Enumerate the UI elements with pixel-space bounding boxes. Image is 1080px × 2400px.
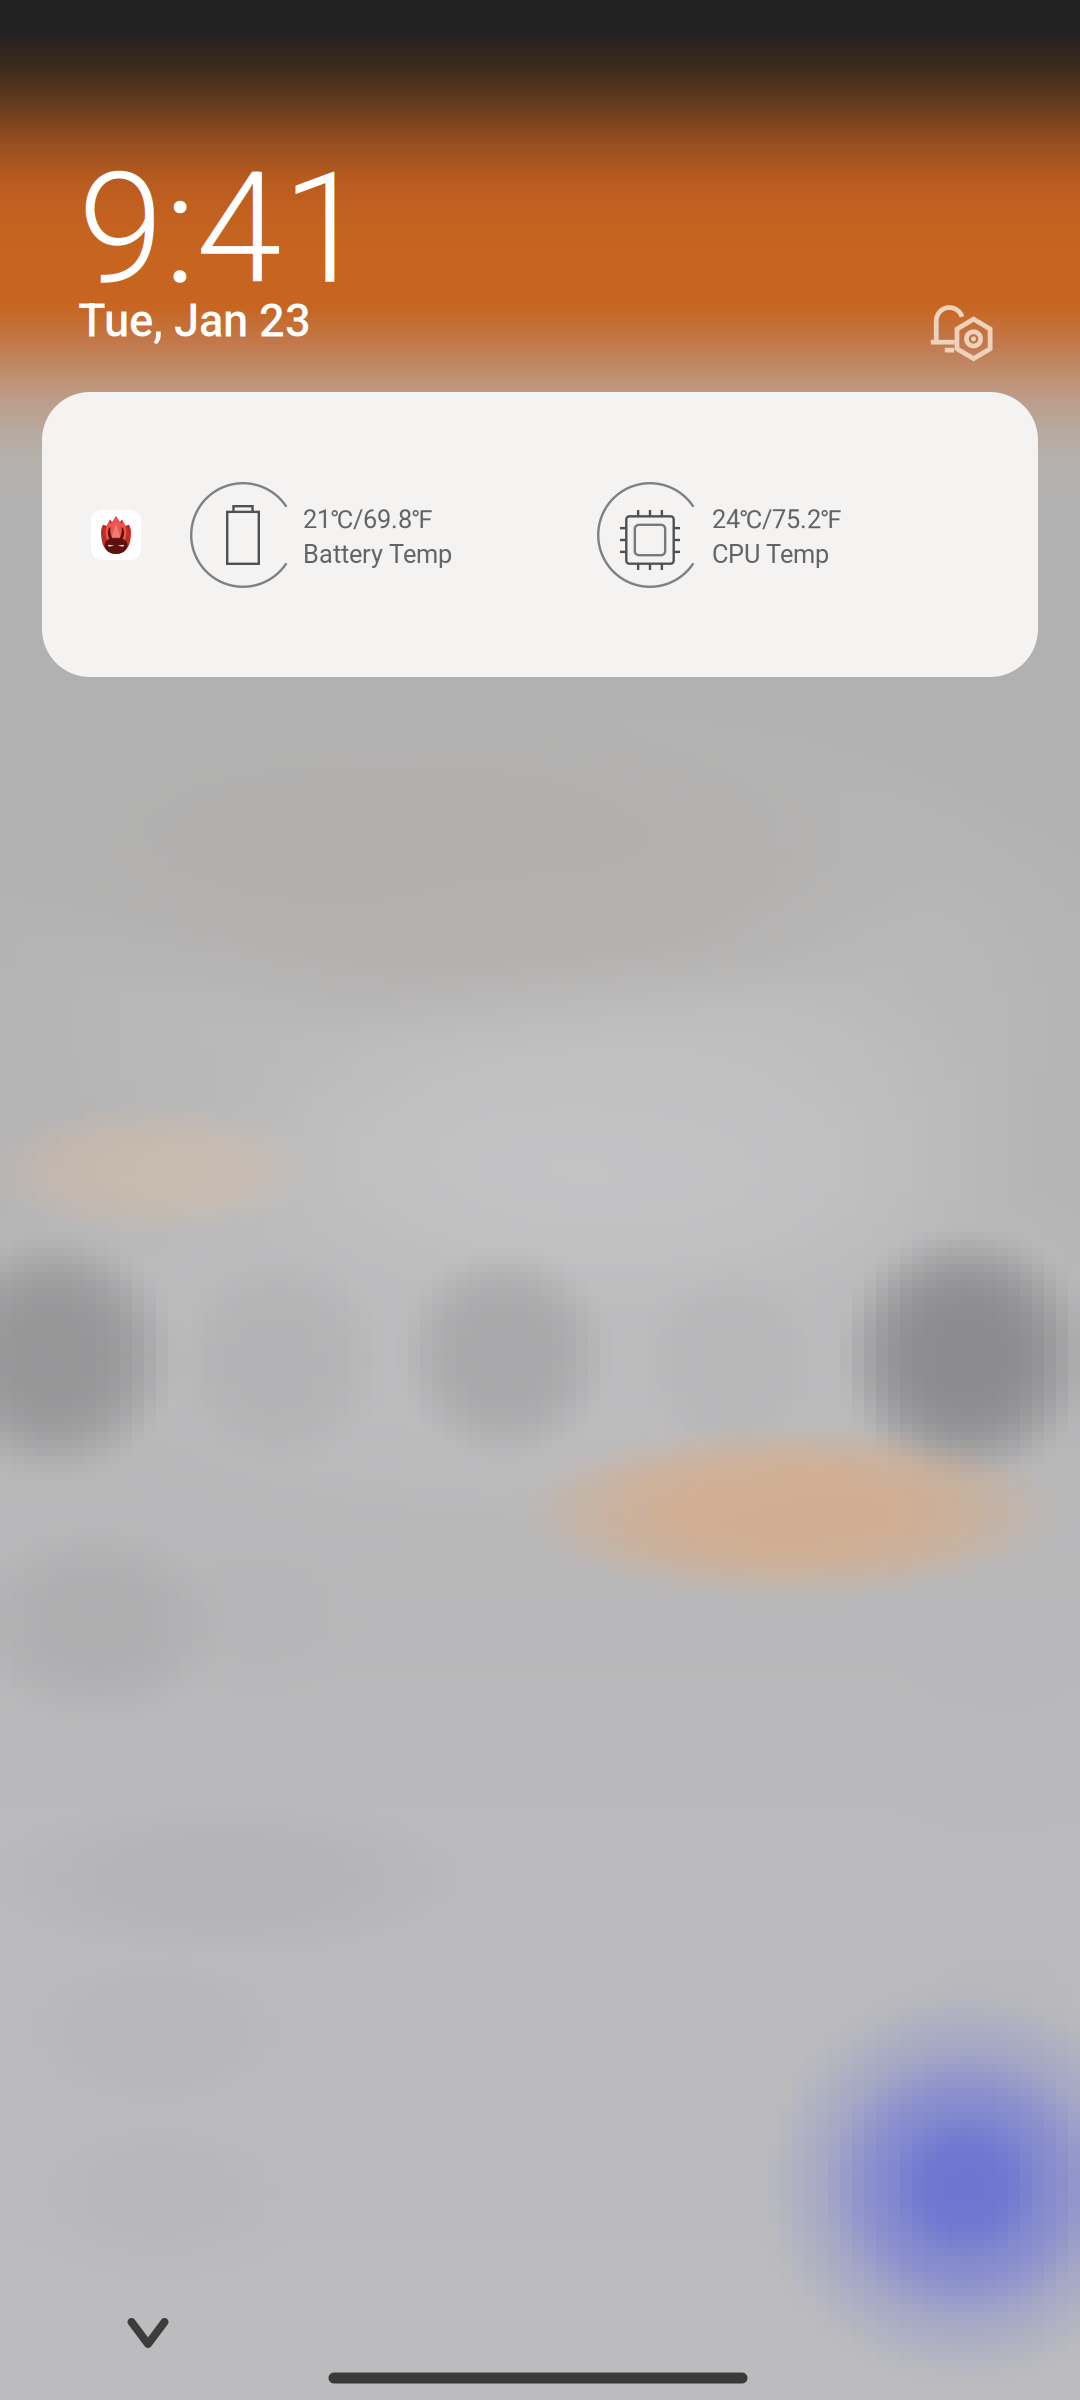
button[interactable]: 21℃/69.8℉ [42,392,1038,677]
staticText: 21℃/69.8℉ [303,505,432,534]
staticText: 9:41 [78,138,368,320]
button[interactable]: Collapse notifications [97,2288,198,2378]
staticText: CPU Temp [712,539,829,569]
staticText: 24℃/75.2℉ [712,505,841,534]
button[interactable]: Notification settings [915,173,1030,375]
staticText: Battery Temp [303,539,452,569]
staticText: Tue, Jan 23 [78,294,311,347]
